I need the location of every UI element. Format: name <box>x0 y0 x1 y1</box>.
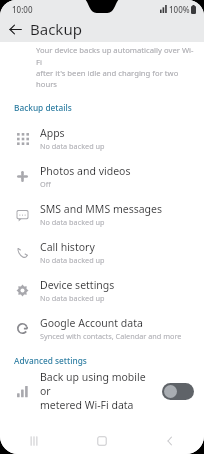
staticText: No data backed up <box>40 255 105 265</box>
button[interactable]: Back up using mobile or metered Wi-Fi da… <box>162 383 194 400</box>
button[interactable]: SMS and MMS messages <box>0 195 204 233</box>
button[interactable]: Google Account data <box>0 309 204 347</box>
staticText: Call history <box>40 240 95 254</box>
staticText: No data backed up <box>40 141 105 151</box>
button[interactable]: Photos and videos <box>0 157 204 195</box>
button[interactable]: Back up using mobile or metered Wi-Fi da… <box>0 370 204 412</box>
staticText: Off <box>40 179 51 189</box>
button[interactable]: Apps <box>0 119 204 157</box>
button[interactable]: Home <box>68 427 136 454</box>
staticText: Synced with contacts, Calendar and more <box>40 331 182 341</box>
button[interactable]: Device settings <box>0 271 204 309</box>
button[interactable]: Navigate up <box>0 16 30 42</box>
staticText: Your device backs up automatically over … <box>36 45 194 89</box>
staticText: SMS and MMS messages <box>40 202 162 216</box>
button[interactable]: Back <box>136 427 204 454</box>
staticText: Backup details <box>14 102 72 113</box>
button[interactable]: Call history <box>0 233 204 271</box>
staticText: Google Account data <box>40 316 143 330</box>
button[interactable]: Recents <box>0 427 68 454</box>
staticText: No data backed up <box>40 293 105 303</box>
staticText: 100% <box>169 4 190 15</box>
staticText: Backup <box>30 19 82 39</box>
staticText: Back up using mobile or metered Wi-Fi da… <box>40 370 158 412</box>
staticText: Apps <box>40 126 65 140</box>
staticText: 10:00 <box>12 4 33 15</box>
staticText: Advanced settings <box>14 355 87 366</box>
staticText: No data backed up <box>40 217 105 227</box>
staticText: Photos and videos <box>40 164 131 178</box>
staticText: Device settings <box>40 278 115 292</box>
